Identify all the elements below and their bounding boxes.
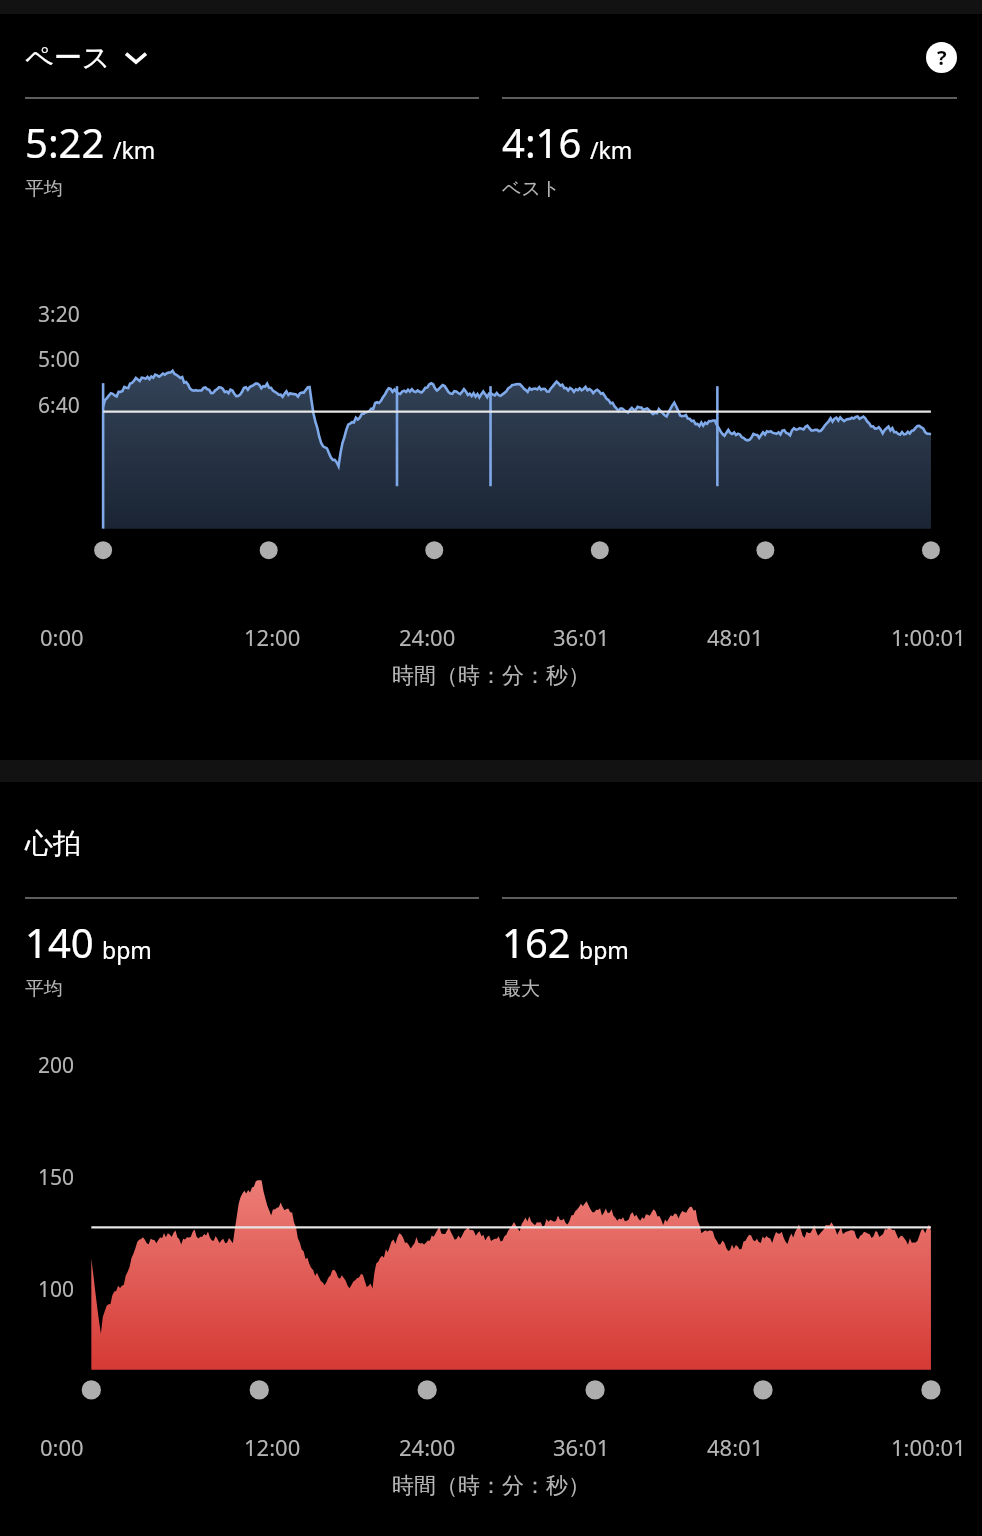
staticText: 0:00	[40, 622, 84, 652]
staticText: 36:01	[553, 622, 610, 652]
staticText: 36:01	[553, 1432, 610, 1462]
staticText: 200	[38, 1051, 75, 1080]
staticText: 4:16	[502, 115, 582, 169]
staticText: ペース	[25, 40, 111, 75]
staticText: 5:00	[38, 345, 80, 374]
staticText: 1:00:01	[891, 1432, 966, 1462]
staticText: 24:00	[399, 1432, 456, 1462]
staticText: bpm	[579, 934, 629, 965]
staticText: ?	[937, 44, 947, 71]
staticText: 140	[25, 915, 94, 969]
staticText: 時間（時：分：秒）	[0, 662, 982, 690]
staticText: 平均	[25, 177, 63, 201]
staticText: bpm	[102, 934, 152, 965]
staticText: 12:00	[244, 622, 301, 652]
staticText: ベスト	[502, 177, 561, 201]
staticText: 12:00	[244, 1432, 301, 1462]
staticText: 最大	[502, 977, 540, 1001]
staticText: 24:00	[399, 622, 456, 652]
staticText: /km	[113, 134, 156, 165]
staticText: 0:00	[40, 1432, 84, 1462]
staticText: /km	[590, 134, 633, 165]
staticText: 48:01	[707, 1432, 764, 1462]
button[interactable]: ペース	[25, 40, 147, 75]
staticText: 100	[38, 1275, 75, 1304]
staticText: 平均	[25, 977, 63, 1001]
staticText: 150	[38, 1163, 75, 1192]
staticText: 5:22	[25, 115, 105, 169]
staticText: 心拍	[25, 826, 81, 861]
staticText: 1:00:01	[891, 622, 966, 652]
staticText: 162	[502, 915, 571, 969]
staticText: 時間（時：分：秒）	[0, 1472, 982, 1500]
staticText: 3:20	[38, 300, 80, 329]
staticText: 48:01	[707, 622, 764, 652]
button[interactable]: Help	[926, 42, 957, 73]
staticText: 6:40	[38, 391, 80, 420]
